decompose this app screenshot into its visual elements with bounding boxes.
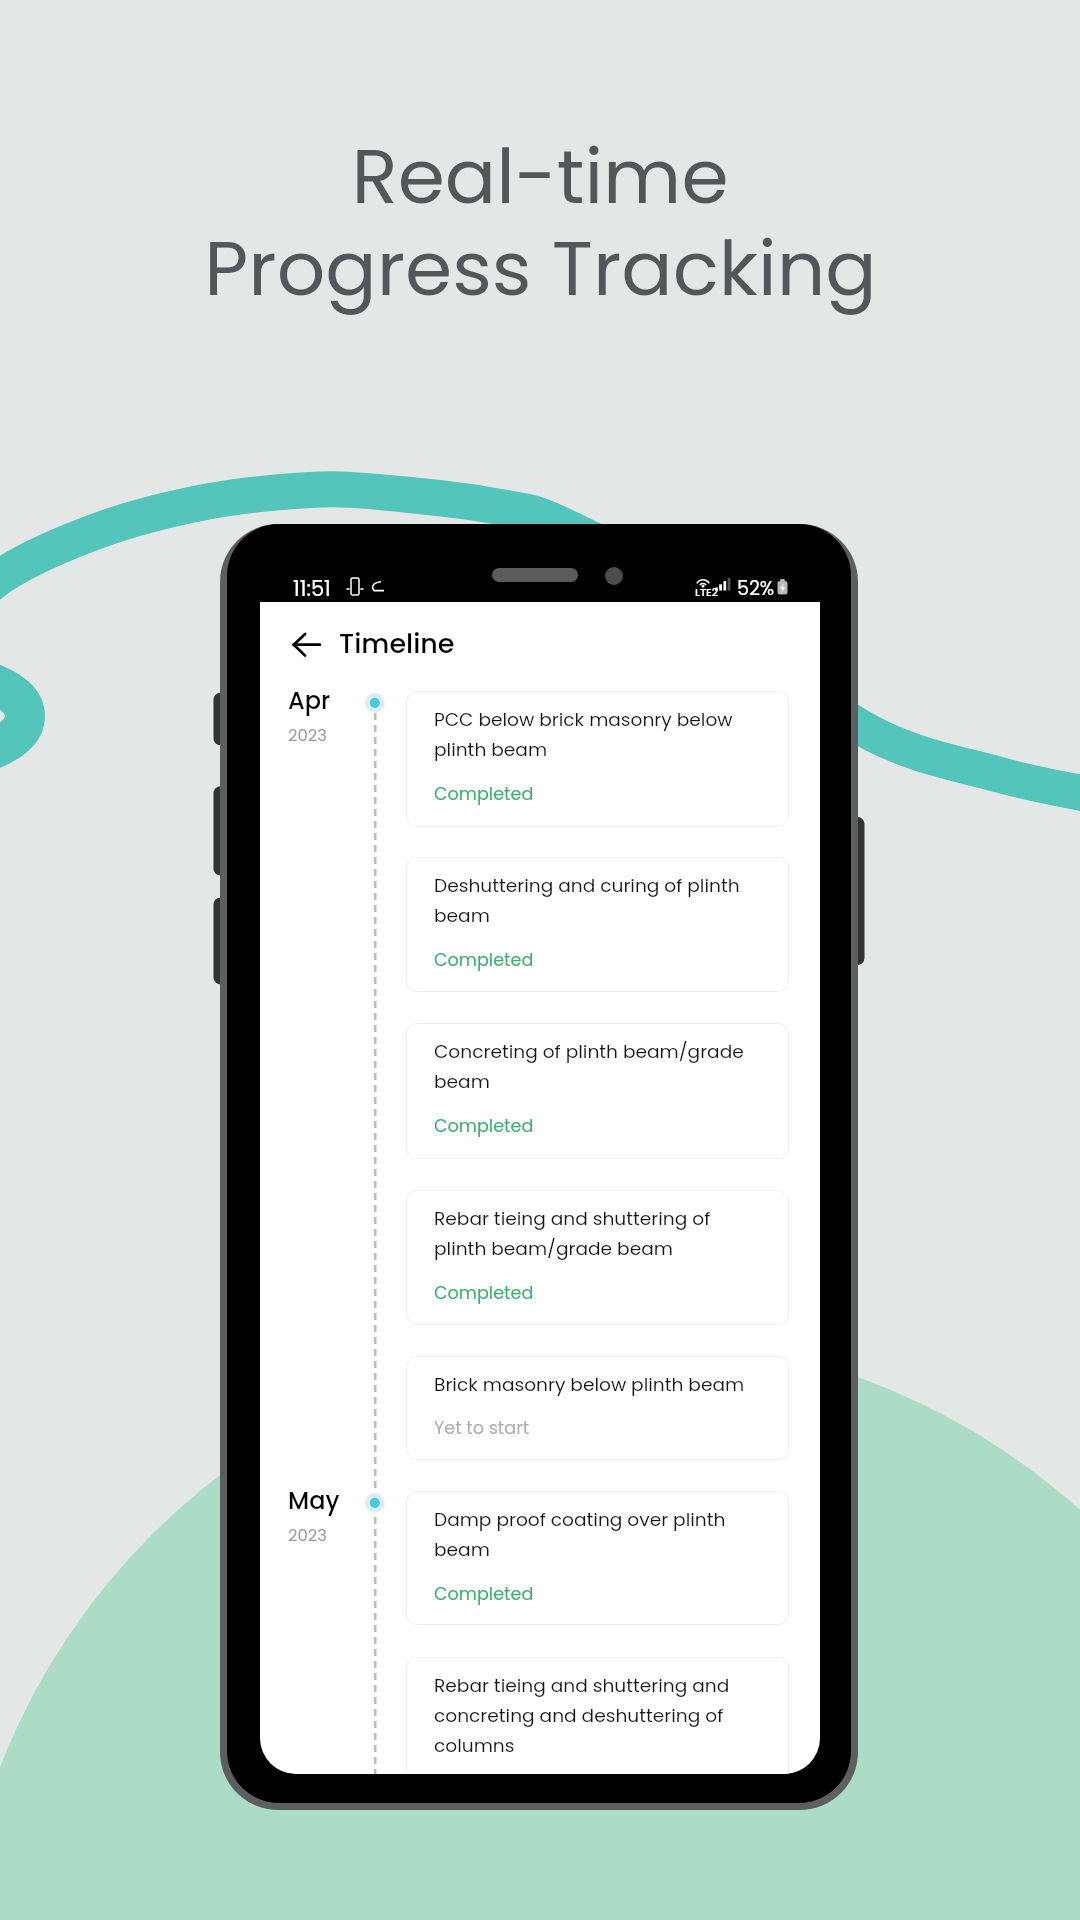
staticText: PCC below brick masonry below plinth bea… <box>434 706 733 763</box>
staticText: LTE2 <box>695 584 719 599</box>
staticText: Rebar tieing and shuttering of plinth be… <box>434 1205 711 1262</box>
staticText: Deshuttering and curing of plinth beam <box>434 872 740 929</box>
button[interactable]: Brick masonry below plinth beam <box>406 1356 789 1460</box>
staticText: Completed <box>434 782 534 807</box>
staticText: Brick masonry below plinth beam <box>434 1371 745 1397</box>
staticText: Completed <box>434 1582 534 1607</box>
button[interactable]: Rebar tieing and shuttering of plinth be… <box>406 1190 789 1325</box>
staticText: Damp proof coating over plinth beam <box>434 1506 726 1563</box>
staticText: Completed <box>434 1114 534 1139</box>
staticText: Completed <box>434 1281 534 1306</box>
button[interactable]: Rebar tieing and shuttering and concreti… <box>406 1657 789 1774</box>
staticText: Rebar tieing and shuttering and concreti… <box>434 1672 730 1759</box>
staticText: Progress Tracking <box>204 215 877 321</box>
button[interactable]: Concreting of plinth beam/grade beam <box>406 1023 789 1159</box>
staticText: 11:51 <box>293 574 331 603</box>
button[interactable]: Timeline <box>339 625 455 663</box>
button[interactable]: PCC below brick masonry below plinth bea… <box>406 691 789 827</box>
staticText: 52% <box>737 575 775 602</box>
staticText: Concreting of plinth beam/grade beam <box>434 1038 744 1095</box>
button[interactable]: Deshuttering and curing of plinth beam <box>406 857 789 992</box>
button[interactable]: Back <box>282 621 330 669</box>
button[interactable]: Damp proof coating over plinth beam <box>406 1491 789 1625</box>
staticText: 2023 <box>288 724 328 747</box>
staticText: May <box>288 1484 340 1518</box>
staticText: Completed <box>434 948 534 973</box>
staticText: Apr <box>288 684 331 718</box>
staticText: Real-time <box>351 123 729 229</box>
staticText: Yet to start <box>434 1416 530 1441</box>
staticText: 2023 <box>288 1524 328 1547</box>
